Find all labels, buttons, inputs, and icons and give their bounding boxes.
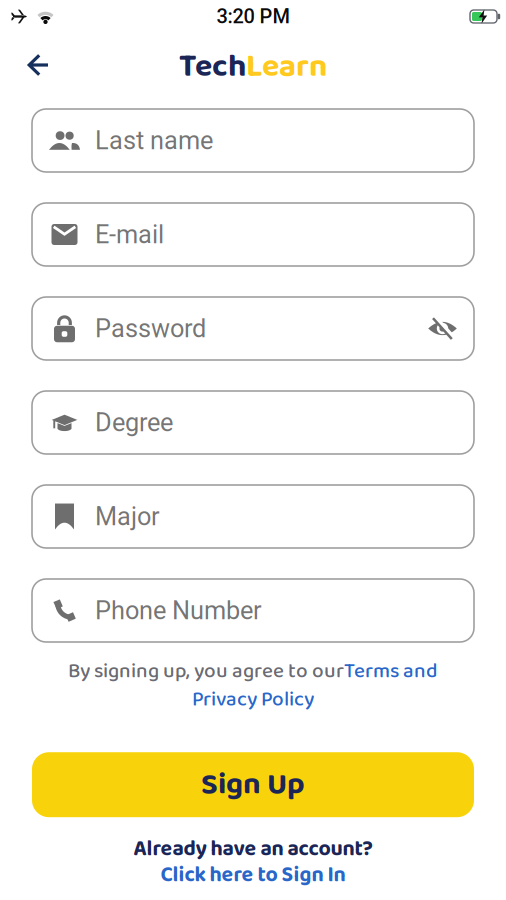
button[interactable]: Phone Number — [32, 579, 474, 642]
button[interactable]: Password — [32, 297, 474, 360]
staticText: Already have an account? — [133, 832, 372, 866]
staticText: Sign Up — [201, 760, 305, 809]
button[interactable]: Major — [32, 485, 474, 548]
staticText: Degree — [95, 408, 173, 437]
staticText: Last name — [95, 126, 213, 155]
staticText: Phone Number — [95, 596, 262, 625]
staticText: E-mail — [95, 220, 164, 249]
button[interactable]: Click here to Sign In — [160, 866, 345, 892]
button[interactable] — [427, 313, 458, 344]
button[interactable]: Terms and — [344, 655, 438, 688]
staticText: Privacy Policy — [192, 683, 314, 716]
staticText: By signing up, you agree to our — [68, 655, 344, 688]
staticText: Password — [95, 314, 206, 343]
staticText: Major — [95, 502, 160, 531]
button[interactable]: Degree — [32, 391, 474, 454]
staticText: Terms and — [344, 655, 438, 688]
staticText: 3:20 PM — [216, 5, 289, 28]
staticText: Learn — [246, 41, 327, 93]
button[interactable]: Sign Up — [32, 752, 474, 817]
button[interactable]: E-mail — [32, 203, 474, 266]
button[interactable] — [0, 54, 49, 75]
staticText: Tech — [179, 41, 246, 93]
button[interactable]: Last name — [32, 109, 474, 172]
staticText: Click here to Sign In — [160, 858, 345, 892]
button[interactable]: Privacy Policy — [192, 688, 314, 721]
